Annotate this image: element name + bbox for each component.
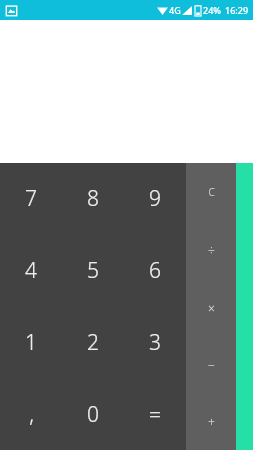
button[interactable]: 2	[62, 306, 124, 378]
staticText: 9	[149, 184, 161, 213]
staticText: 24%	[203, 4, 221, 16]
button[interactable]: −	[186, 336, 236, 393]
staticText: 2	[87, 328, 99, 357]
button[interactable]: C	[186, 163, 236, 221]
staticText: −	[208, 357, 215, 373]
staticText: 1	[25, 328, 37, 357]
button[interactable]: 0	[62, 378, 124, 450]
staticText: 4	[25, 256, 37, 285]
button[interactable]: 8	[62, 163, 124, 234]
other: Screenshot notification	[5, 4, 18, 17]
staticText: 7	[25, 184, 37, 213]
staticText: 0	[87, 400, 99, 429]
button[interactable]: +	[186, 393, 236, 450]
button[interactable]: 6	[124, 234, 186, 306]
button[interactable]: 5	[62, 234, 124, 306]
staticText: 16:29	[225, 4, 249, 16]
button[interactable]: 9	[124, 163, 186, 234]
button[interactable]: 1	[0, 306, 62, 378]
button[interactable]: 4	[0, 234, 62, 306]
staticText: 6	[149, 256, 161, 285]
staticText: ,	[29, 400, 34, 429]
staticText: 3	[149, 328, 161, 357]
staticText: 8	[87, 184, 99, 213]
staticText: 4G	[169, 4, 181, 16]
staticText: C	[208, 185, 215, 199]
staticText: 5	[87, 256, 99, 285]
button[interactable]: ,	[0, 378, 62, 450]
staticText: =	[149, 400, 161, 429]
button[interactable]: ×	[186, 279, 236, 336]
button[interactable]: 7	[0, 163, 62, 234]
button[interactable]: =	[124, 378, 186, 450]
button[interactable]: 3	[124, 306, 186, 378]
staticText: ÷	[208, 242, 215, 258]
staticText: +	[208, 414, 215, 430]
staticText: ×	[208, 300, 215, 316]
button[interactable]: ÷	[186, 221, 236, 279]
